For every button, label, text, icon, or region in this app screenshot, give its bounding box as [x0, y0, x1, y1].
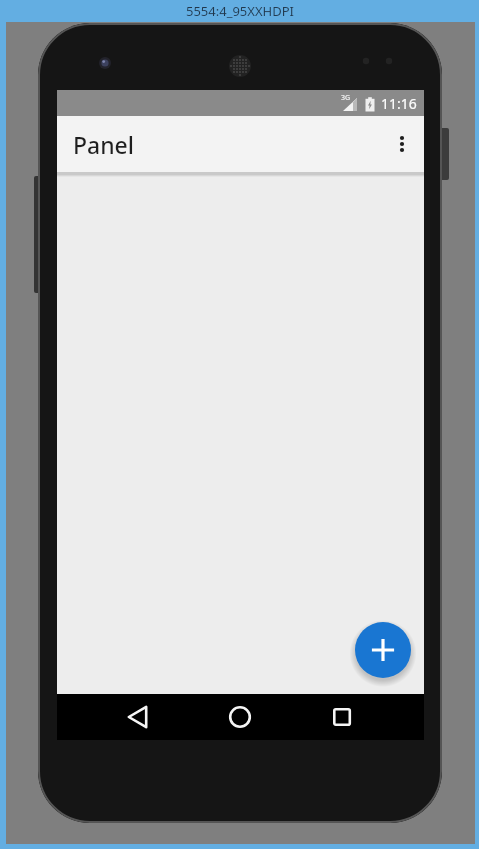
- staticText: Panel: [73, 129, 135, 160]
- button[interactable]: [355, 622, 411, 678]
- button[interactable]: [110, 694, 166, 740]
- button[interactable]: [314, 694, 370, 740]
- button[interactable]: [380, 116, 424, 172]
- staticText: 3G: [341, 93, 351, 103]
- staticText: 5554:4_95XXHDPI: [186, 2, 294, 20]
- staticText: 11:16: [381, 94, 417, 113]
- button[interactable]: [212, 694, 268, 740]
